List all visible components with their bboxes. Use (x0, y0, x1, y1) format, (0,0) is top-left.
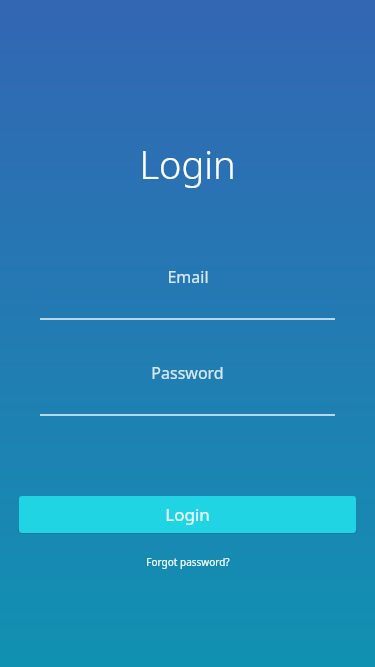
button[interactable]: Email (0, 266, 375, 320)
staticText: Login (139, 138, 236, 190)
button[interactable]: Password (0, 362, 375, 416)
staticText: Login (165, 503, 210, 526)
staticText: Email (167, 266, 209, 288)
staticText: Forgot password? (146, 555, 230, 569)
staticText: Password (151, 362, 224, 384)
button[interactable]: Login (19, 496, 356, 533)
button[interactable]: Forgot password? (138, 552, 238, 572)
